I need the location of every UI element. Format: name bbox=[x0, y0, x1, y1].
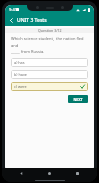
button[interactable]: Back bbox=[18, 170, 25, 177]
button[interactable]: Recent apps bbox=[74, 170, 81, 177]
staticText: a) has bbox=[14, 60, 25, 65]
button[interactable]: Back bbox=[5, 14, 17, 26]
staticText: b) have bbox=[14, 72, 28, 77]
button[interactable]: Home bbox=[46, 170, 53, 177]
staticText: UNIT 3 Tests bbox=[17, 17, 47, 24]
button[interactable]: NEXT bbox=[68, 95, 88, 103]
staticText: NEXT bbox=[73, 97, 83, 102]
button[interactable]: c) were bbox=[11, 82, 88, 91]
staticText: c) were bbox=[14, 84, 27, 89]
staticText: 9:41 bbox=[9, 7, 17, 12]
staticText: Question 3/12 bbox=[38, 28, 62, 33]
staticText: Which science student, the nation fled a… bbox=[11, 36, 88, 54]
button[interactable]: b) have bbox=[11, 70, 88, 79]
button[interactable]: a) has bbox=[11, 58, 88, 67]
